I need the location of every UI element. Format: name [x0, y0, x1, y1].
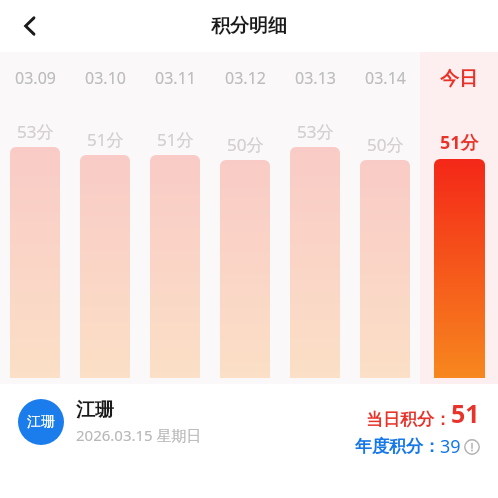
other: 说明 — [464, 439, 480, 455]
button[interactable]: 03.14 — [350, 52, 420, 384]
staticText: 51分 — [87, 128, 124, 151]
staticText: 50分 — [367, 133, 404, 156]
button[interactable]: 江珊 — [18, 398, 355, 445]
button[interactable]: 今日 — [420, 52, 498, 384]
staticText: 03.10 — [85, 67, 126, 89]
staticText: 03.09 — [15, 67, 56, 89]
button[interactable]: 03.10 — [70, 52, 140, 384]
staticText: 53分 — [297, 120, 334, 143]
staticText: 51分 — [157, 128, 194, 151]
staticText: 当日积分： — [366, 409, 451, 430]
staticText: 今日 — [440, 67, 478, 91]
button[interactable]: 03.09 — [0, 52, 70, 384]
button[interactable]: 03.13 — [280, 52, 350, 384]
staticText: 39 — [440, 434, 461, 459]
staticText: 积分明细 — [211, 14, 287, 38]
staticText: 51 — [451, 396, 480, 430]
staticText: 03.11 — [155, 67, 196, 89]
staticText: 51分 — [440, 130, 479, 155]
staticText: 年度积分： — [355, 436, 440, 457]
staticText: 03.12 — [225, 67, 266, 89]
staticText: 03.13 — [295, 67, 336, 89]
staticText: 2026.03.15 星期日 — [76, 425, 202, 445]
staticText: 53分 — [17, 120, 54, 143]
staticText: 江珊 — [76, 398, 114, 422]
button[interactable]: 03.12 — [210, 52, 280, 384]
button[interactable]: 返回 — [8, 4, 52, 48]
button[interactable]: 03.11 — [140, 52, 210, 384]
button[interactable]: 年度积分： — [355, 434, 480, 459]
staticText: 03.14 — [365, 67, 406, 89]
staticText: 50分 — [227, 133, 264, 156]
staticText: 江珊 — [27, 413, 55, 431]
